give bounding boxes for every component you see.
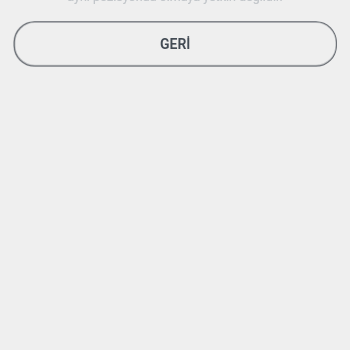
button[interactable]: GERİ bbox=[13, 21, 337, 67]
staticText: GERİ bbox=[160, 35, 191, 51]
staticText: aynı pozisyonda olmaya yetkin değildir. bbox=[0, 0, 350, 3]
